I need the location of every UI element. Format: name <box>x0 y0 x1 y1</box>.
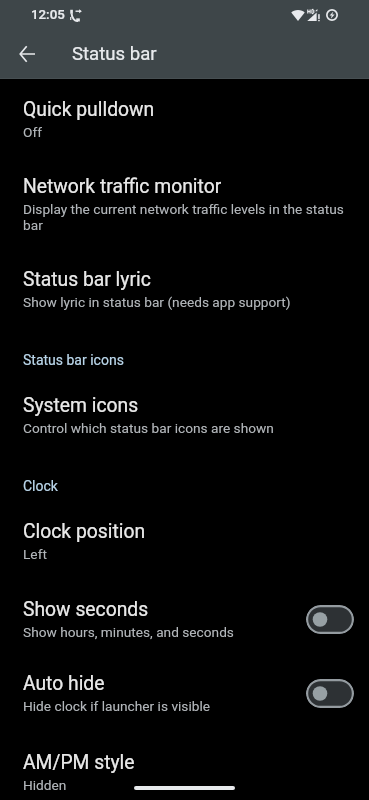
staticText: Clock position <box>23 520 146 543</box>
button[interactable]: System icons <box>0 394 369 436</box>
button[interactable]: Status bar lyric <box>0 268 369 310</box>
staticText: Show lyric in status bar (needs app supp… <box>23 294 291 310</box>
staticText: 12:05 <box>31 7 65 23</box>
staticText: Control which status bar icons are shown <box>23 420 274 436</box>
staticText: Clock <box>23 478 58 494</box>
staticText: AM/PM style <box>23 751 135 774</box>
staticText: Show seconds <box>23 598 149 621</box>
staticText: Status bar <box>72 43 157 65</box>
staticText: Network traffic monitor <box>23 175 222 198</box>
staticText: Hide clock if launcher is visible <box>23 698 211 714</box>
button[interactable]: Show seconds <box>0 598 369 640</box>
staticText: Auto hide <box>23 672 105 695</box>
button[interactable]: Quick pulldown <box>0 98 369 140</box>
button[interactable]: Toggle setting <box>306 605 354 634</box>
staticText: Hidden <box>23 777 67 793</box>
staticText: Show hours, minutes, and seconds <box>23 624 234 640</box>
staticText: System icons <box>23 394 139 417</box>
staticText: Status bar lyric <box>23 268 151 291</box>
staticText: Status bar icons <box>23 352 124 368</box>
button[interactable]: Toggle setting <box>306 679 354 708</box>
staticText: Display the current network traffic leve… <box>23 201 348 233</box>
staticText: Off <box>23 124 42 140</box>
button[interactable]: Clock position <box>0 520 369 562</box>
button[interactable]: Auto hide <box>0 672 369 714</box>
button[interactable]: Navigate up <box>7 34 47 74</box>
button[interactable]: Network traffic monitor <box>0 175 369 233</box>
staticText: Left <box>23 546 47 562</box>
button[interactable]: AM/PM style <box>0 751 369 793</box>
staticText: Quick pulldown <box>23 98 155 121</box>
